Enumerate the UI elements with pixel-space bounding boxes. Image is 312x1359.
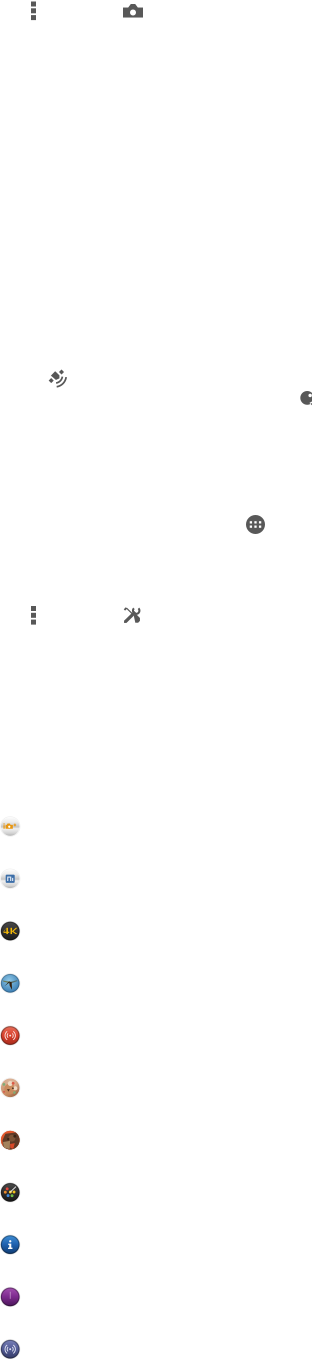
button[interactable]: Open item 3: [0, 921, 20, 941]
button[interactable]: Open item 4: [0, 973, 20, 993]
button[interactable]: Open item 1: [0, 816, 20, 837]
button[interactable]: Open item 2: [0, 869, 20, 889]
button[interactable]: Open item 8: [0, 1182, 20, 1203]
button[interactable]: Location: [48, 369, 67, 388]
button[interactable]: Open item 9: [0, 1234, 20, 1255]
button[interactable]: Open item 7: [0, 1130, 20, 1150]
button[interactable]: Open item 5: [0, 1025, 20, 1046]
button[interactable]: Map pin: [300, 390, 312, 410]
button[interactable]: More options: [31, 1, 36, 20]
button[interactable]: Open item 10: [0, 1287, 20, 1307]
button[interactable]: Open item 6: [0, 1078, 20, 1098]
button[interactable]: Open item 11: [0, 1339, 20, 1359]
button[interactable]: Camera: [123, 4, 143, 17]
button[interactable]: Apps: [246, 515, 265, 534]
button[interactable]: More options: [31, 606, 36, 625]
button[interactable]: Tools: [123, 606, 141, 624]
